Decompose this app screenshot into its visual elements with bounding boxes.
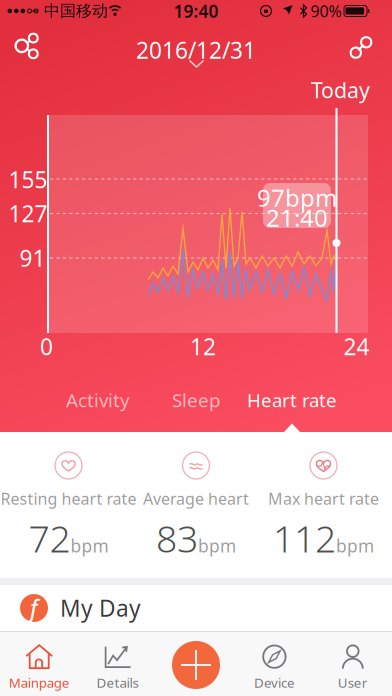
- staticText: 91: [19, 243, 45, 273]
- button[interactable]: Device: [235, 637, 314, 696]
- staticText: 97bpm: [257, 182, 337, 213]
- button[interactable]: Details: [78, 637, 157, 696]
- button[interactable]: Add: [172, 641, 220, 689]
- staticText: 155: [8, 164, 47, 194]
- staticText: 12: [190, 331, 216, 361]
- staticText: 72: [28, 513, 70, 563]
- staticText: 90%: [310, 0, 341, 22]
- staticText: Today: [311, 76, 370, 104]
- staticText: 24: [343, 331, 369, 361]
- button[interactable]: Heart rate: [237, 385, 347, 415]
- button[interactable]: Activity: [48, 385, 148, 415]
- staticText: 21:40: [266, 202, 328, 233]
- staticText: Resting heart rate: [0, 488, 136, 509]
- button[interactable]: f: [0, 585, 392, 631]
- staticText: Sleep: [172, 388, 220, 412]
- staticText: 127: [8, 198, 47, 228]
- staticText: 中国移动: [44, 1, 108, 21]
- staticText: bpm: [198, 534, 236, 557]
- staticText: My Day: [60, 593, 141, 623]
- staticText: 2016/12/31: [136, 35, 256, 65]
- button[interactable]: Connect device: [349, 36, 372, 59]
- staticText: 112: [273, 513, 336, 563]
- staticText: Heart rate: [247, 388, 337, 412]
- staticText: Activity: [66, 388, 130, 412]
- button[interactable]: User: [314, 637, 392, 696]
- button[interactable]: Sleep: [151, 385, 241, 415]
- staticText: f: [30, 593, 38, 623]
- staticText: Average heart: [143, 488, 249, 509]
- button[interactable]: Mainpage: [0, 637, 78, 696]
- staticText: Max heart rate: [268, 488, 379, 509]
- staticText: Device: [254, 674, 295, 691]
- staticText: User: [338, 674, 368, 691]
- button[interactable]: Choose date: [126, 29, 266, 69]
- staticText: 83: [156, 513, 198, 563]
- staticText: Details: [97, 674, 139, 691]
- button[interactable]: Share: [13, 31, 41, 61]
- staticText: 19:40: [173, 0, 218, 22]
- staticText: bpm: [70, 534, 108, 557]
- staticText: 0: [40, 331, 53, 361]
- staticText: bpm: [336, 534, 374, 557]
- staticText: Mainpage: [9, 674, 70, 691]
